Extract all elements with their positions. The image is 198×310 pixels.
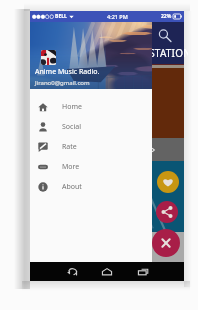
button[interactable]: Anime Music Radio.	[30, 22, 152, 89]
staticText: ANIME MUSIC RADIO00STATION	[34, 46, 188, 60]
button[interactable]: More	[30, 157, 152, 177]
staticText: Jirano0@gmail.com	[35, 79, 90, 87]
button[interactable]: Share	[156, 201, 178, 223]
button[interactable]: Close	[152, 229, 180, 257]
staticText: More	[62, 162, 80, 172]
staticText: Anime Music Radio.	[35, 67, 100, 77]
button[interactable]: Social	[30, 117, 152, 137]
button[interactable]: Back	[66, 267, 78, 277]
button[interactable]: About	[30, 177, 152, 197]
staticText: ●●●○○ BELL	[32, 13, 67, 20]
button[interactable]: Search	[157, 28, 172, 43]
staticText: Rate	[62, 142, 77, 152]
button[interactable]: Recents	[137, 267, 149, 277]
button[interactable]: Rate	[30, 137, 152, 157]
staticText: Home	[62, 102, 82, 112]
staticText: About	[62, 182, 82, 192]
button[interactable]: Home	[30, 97, 152, 117]
button[interactable]: Favourite	[157, 171, 179, 193]
staticText: 22%	[161, 13, 172, 20]
staticText: 4:21 PM	[107, 13, 128, 20]
button[interactable]: Home	[101, 267, 113, 277]
staticText: Social	[62, 122, 81, 132]
